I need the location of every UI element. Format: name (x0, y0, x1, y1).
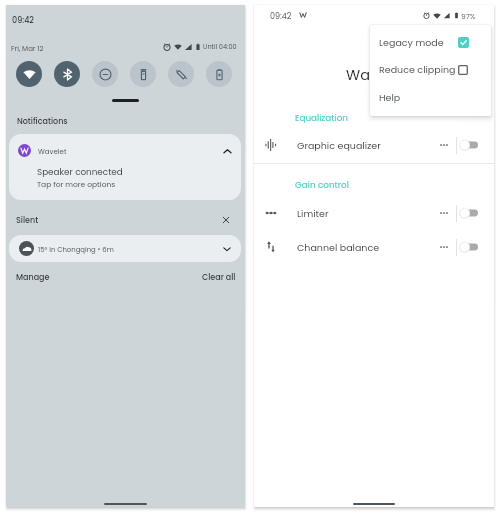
button[interactable]: Battery saver (206, 61, 232, 87)
staticText: Legacy mode (379, 36, 444, 49)
button[interactable]: Flashlight (130, 61, 156, 87)
staticText: Until 04:00 (203, 42, 237, 51)
staticText: 09:42 (270, 11, 292, 22)
staticText: Fri, Mar 12 (11, 44, 44, 54)
staticText: Wavelet (346, 65, 405, 85)
staticText: 15° in Chongqing • 6m (38, 245, 114, 255)
button[interactable]: Toggle Graphic equalizer (458, 129, 484, 161)
button[interactable]: Limiter (254, 197, 494, 229)
staticText: Manage (16, 272, 50, 283)
staticText: Silent (16, 215, 39, 226)
button[interactable]: Wi-Fi (16, 61, 42, 87)
button[interactable]: Auto-rotate (168, 61, 194, 87)
staticText: Channel balance (297, 241, 380, 254)
button[interactable]: Clear all (202, 272, 236, 283)
staticText: Limiter (297, 207, 329, 220)
staticText: Tap for more options (37, 179, 116, 189)
staticText: Wavelet (38, 147, 67, 157)
button[interactable]: Clear silent notifications (217, 211, 235, 229)
button[interactable]: Manage (16, 272, 50, 283)
staticText: Notifications (17, 116, 68, 127)
button[interactable]: Toggle Limiter (458, 197, 484, 229)
button[interactable]: More options (435, 197, 453, 229)
button[interactable]: Wavelet (9, 134, 241, 200)
button[interactable]: Reduce clipping (370, 56, 491, 83)
button[interactable]: 15° in Chongqing • 6m (9, 235, 241, 262)
button[interactable]: Toggle Channel balance (458, 231, 484, 263)
staticText: Clear all (202, 272, 236, 283)
staticText: Equalization (295, 112, 348, 124)
button[interactable]: Do not disturb (92, 61, 118, 87)
button[interactable]: Bluetooth (54, 61, 80, 87)
staticText: Gain control (295, 179, 349, 191)
button[interactable]: More options (435, 129, 453, 161)
button[interactable]: Help (370, 84, 491, 111)
button[interactable]: Collapse notification (218, 142, 237, 161)
staticText: Help (379, 91, 401, 104)
button[interactable]: Legacy mode (370, 29, 491, 56)
staticText: 09:42 (12, 15, 34, 26)
button[interactable]: Graphic equalizer (254, 129, 494, 161)
staticText: 97% (461, 11, 476, 20)
button[interactable]: More options (435, 231, 453, 263)
staticText: Graphic equalizer (297, 139, 381, 152)
staticText: Reduce clipping (379, 63, 456, 76)
button[interactable]: Channel balance (254, 231, 494, 263)
staticText: Speaker connected (37, 166, 123, 178)
